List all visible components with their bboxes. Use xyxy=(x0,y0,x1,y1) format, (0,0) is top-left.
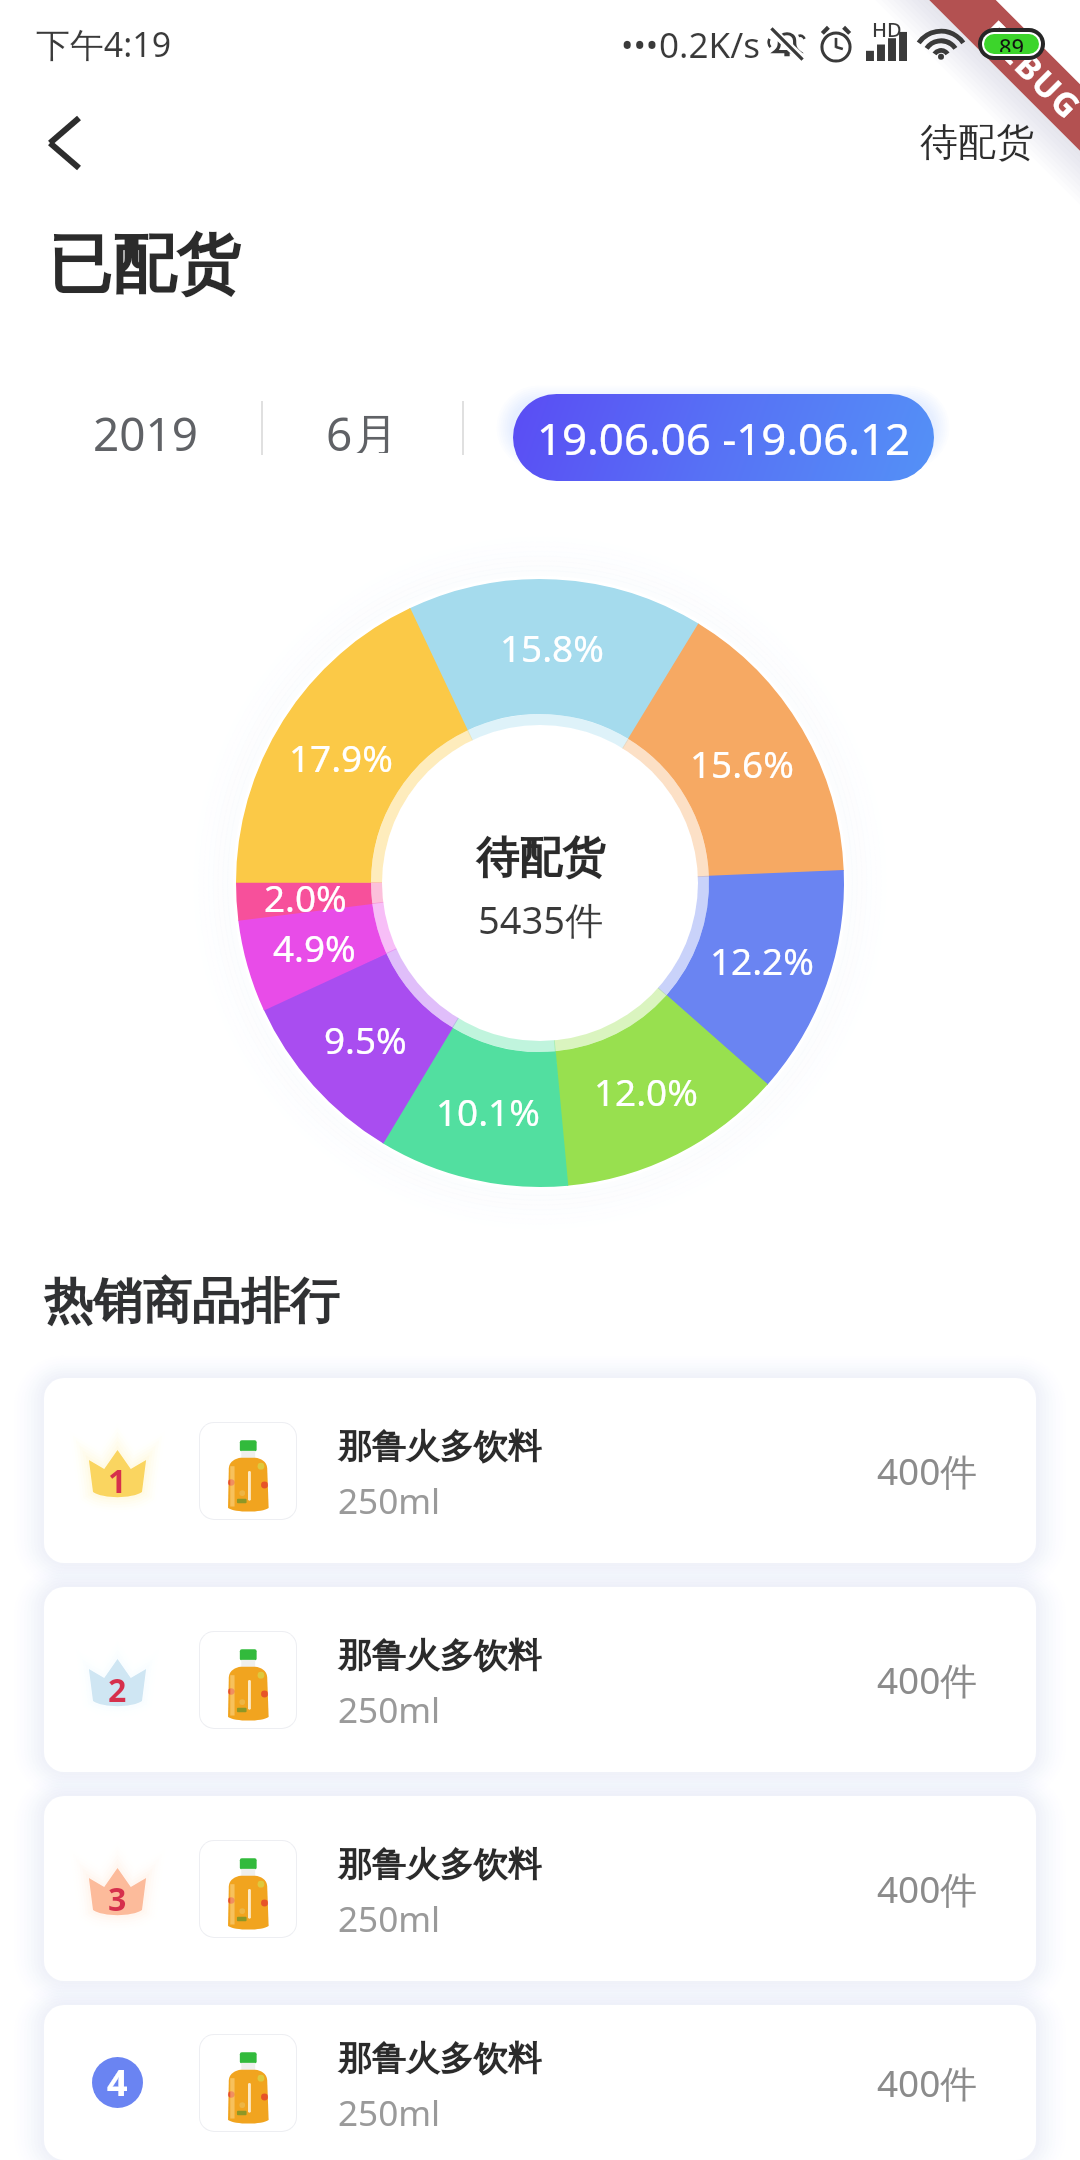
button[interactable]: 6月 xyxy=(302,384,423,471)
staticText: 已配货 xyxy=(48,224,240,304)
staticText: 15.8% xyxy=(500,623,604,673)
staticText: 热销商品排行 xyxy=(44,1271,340,1333)
staticText: 12.0% xyxy=(594,1067,698,1117)
staticText: 250ml xyxy=(338,1476,441,1524)
staticText: 3 xyxy=(108,1877,127,1921)
staticText: 19.06.06 -19.06.12 xyxy=(537,408,911,468)
staticText: 0.2K/s xyxy=(659,20,761,68)
staticText: 那鲁火多饮料 xyxy=(338,1425,542,1468)
staticText: 4.9% xyxy=(273,923,356,973)
button[interactable]: 19.06.06 -19.06.12 xyxy=(513,394,934,481)
button[interactable]: 1 xyxy=(44,1378,1036,1563)
button[interactable]: 4 xyxy=(44,2005,1036,2160)
staticText: 4 xyxy=(107,2058,128,2107)
staticText: 10.1% xyxy=(436,1087,540,1137)
staticText: 15.6% xyxy=(690,739,794,789)
staticText: HD xyxy=(872,16,902,43)
button[interactable]: 待配货 xyxy=(875,103,1080,181)
staticText: 9.5% xyxy=(324,1015,407,1065)
staticText: 400件 xyxy=(877,1655,978,1705)
button[interactable]: 2 xyxy=(44,1587,1036,1772)
staticText: 待配货 xyxy=(920,118,1035,166)
button[interactable]: 2019 xyxy=(69,384,222,471)
staticText: 89 xyxy=(999,34,1025,52)
staticText: 17.9% xyxy=(289,733,393,783)
staticText: 6月 xyxy=(326,402,399,453)
staticText: 400件 xyxy=(877,2058,978,2108)
staticText: DEBUG xyxy=(973,10,1080,129)
staticText: 2 xyxy=(108,1668,127,1712)
staticText: 400件 xyxy=(877,1864,978,1914)
staticText: 待配货 xyxy=(476,831,605,885)
staticText: ••• xyxy=(621,22,659,67)
staticText: 250ml xyxy=(338,2088,441,2136)
staticText: 那鲁火多饮料 xyxy=(338,1634,542,1677)
staticText: 那鲁火多饮料 xyxy=(338,2037,542,2080)
staticText: 12.2% xyxy=(710,936,814,986)
staticText: 400件 xyxy=(877,1446,978,1496)
staticText: 250ml xyxy=(338,1685,441,1733)
staticText: 5435件 xyxy=(478,893,604,945)
staticText: 下午4:19 xyxy=(36,21,172,67)
staticText: 那鲁火多饮料 xyxy=(338,1843,542,1886)
staticText: 2019 xyxy=(93,402,198,453)
staticText: 1 xyxy=(108,1459,127,1503)
button[interactable]: Back xyxy=(15,93,114,192)
staticText: 2.0% xyxy=(264,873,347,923)
button[interactable]: 3 xyxy=(44,1796,1036,1981)
staticText: 250ml xyxy=(338,1894,441,1942)
